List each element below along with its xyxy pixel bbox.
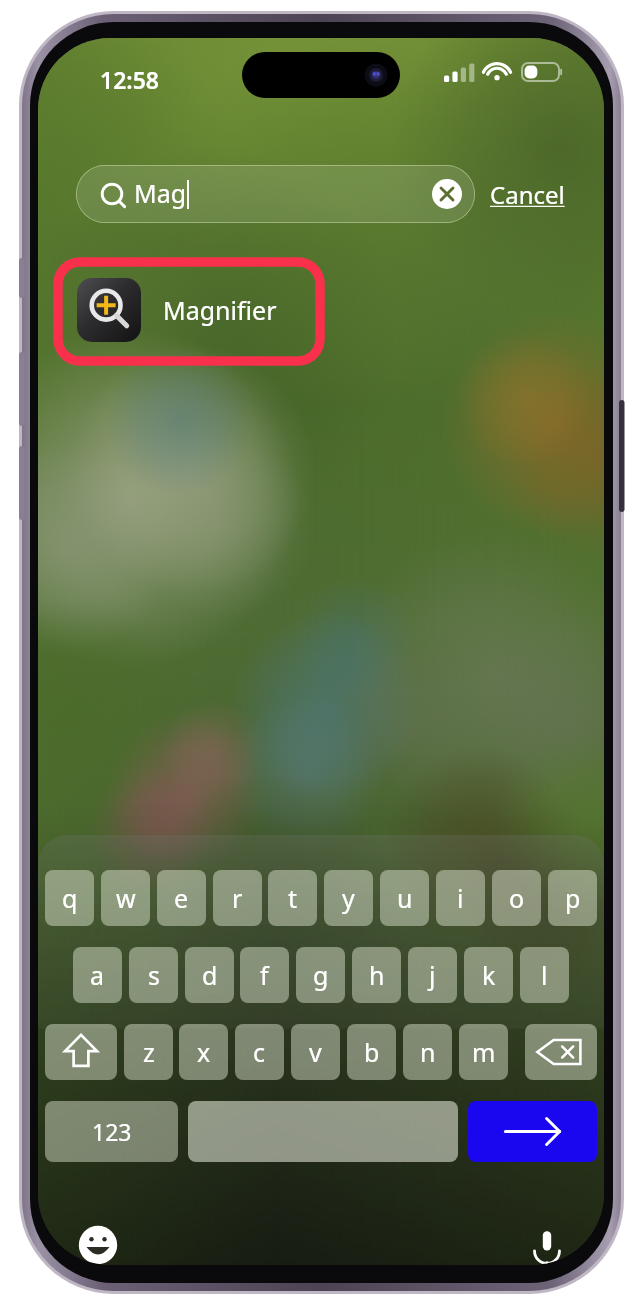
button[interactable]: Emoji <box>74 1221 122 1265</box>
button[interactable]: a <box>73 947 122 1003</box>
staticText: 123 <box>92 1116 132 1147</box>
button[interactable]: k <box>464 947 513 1003</box>
staticText: o <box>509 881 525 915</box>
button[interactable]: j <box>408 947 457 1003</box>
button[interactable]: s <box>129 947 178 1003</box>
button[interactable]: Backspace <box>525 1024 597 1080</box>
button[interactable]: Clear text <box>432 179 462 209</box>
staticText: Mag <box>134 176 187 210</box>
staticText: n <box>420 1035 436 1069</box>
staticText: b <box>364 1035 380 1069</box>
staticText: Magnifier <box>163 293 277 327</box>
staticText: l <box>541 958 548 992</box>
button[interactable]: v <box>291 1024 340 1080</box>
button[interactable]: p <box>548 870 597 926</box>
button[interactable]: c <box>235 1024 284 1080</box>
staticText: t <box>288 881 298 915</box>
staticText: m <box>472 1035 496 1069</box>
button[interactable]: Dictate <box>523 1221 571 1265</box>
staticText: c <box>253 1035 266 1069</box>
button[interactable]: h <box>352 947 401 1003</box>
button[interactable]: y <box>324 870 373 926</box>
button[interactable]: d <box>185 947 234 1003</box>
button[interactable]: Mag <box>76 165 475 223</box>
staticText: q <box>62 881 78 915</box>
staticText: r <box>232 881 243 915</box>
staticText: i <box>457 881 464 915</box>
staticText: e <box>174 881 189 915</box>
button[interactable]: r <box>213 870 262 926</box>
staticText: k <box>482 958 496 992</box>
button[interactable]: g <box>296 947 345 1003</box>
staticText: 12:58 <box>100 64 159 95</box>
button[interactable]: Space <box>188 1101 458 1162</box>
button[interactable]: t <box>268 870 317 926</box>
button[interactable]: Magnifier <box>68 270 318 350</box>
button[interactable]: q <box>45 870 94 926</box>
staticText: x <box>197 1035 211 1069</box>
button[interactable]: Shift <box>45 1024 117 1080</box>
button[interactable]: x <box>179 1024 228 1080</box>
button[interactable]: Cancel <box>490 169 590 219</box>
staticText: d <box>202 958 218 992</box>
button[interactable]: o <box>492 870 541 926</box>
staticText: j <box>429 958 436 992</box>
staticText: z <box>143 1035 155 1069</box>
button[interactable]: b <box>347 1024 396 1080</box>
staticText: g <box>313 958 329 992</box>
staticText: w <box>116 881 136 915</box>
button[interactable]: n <box>403 1024 452 1080</box>
staticText: y <box>342 881 355 915</box>
button[interactable]: f <box>240 947 289 1003</box>
button[interactable]: Search <box>468 1101 597 1162</box>
staticText: p <box>565 881 581 915</box>
staticText: f <box>260 958 269 992</box>
staticText: h <box>369 958 385 992</box>
staticText: s <box>148 958 160 992</box>
staticText: v <box>309 1035 322 1069</box>
button[interactable]: e <box>157 870 206 926</box>
button[interactable]: 123 <box>45 1101 178 1162</box>
button[interactable]: l <box>520 947 569 1003</box>
button[interactable]: z <box>124 1024 173 1080</box>
button[interactable]: u <box>380 870 429 926</box>
staticText: Cancel <box>490 178 565 211</box>
staticText: u <box>397 881 413 915</box>
button[interactable]: w <box>101 870 150 926</box>
button[interactable]: i <box>436 870 485 926</box>
staticText: a <box>90 958 105 992</box>
button[interactable]: m <box>459 1024 508 1080</box>
